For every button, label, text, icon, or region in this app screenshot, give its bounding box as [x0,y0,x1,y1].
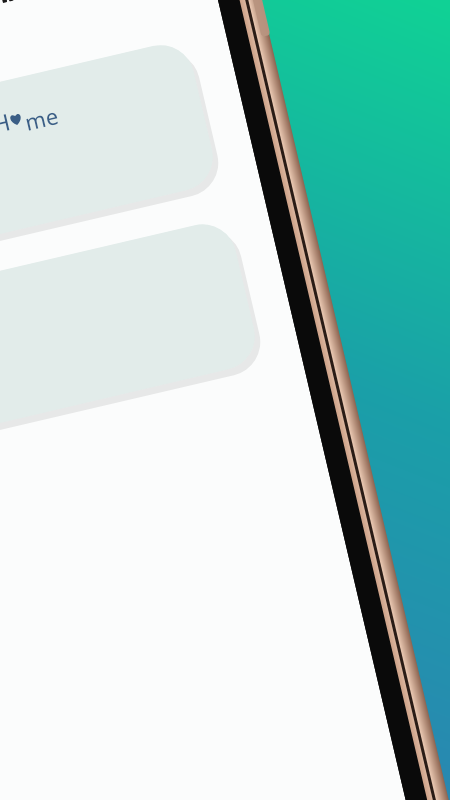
staticText: me [22,100,61,137]
button[interactable]: H [0,90,74,137]
staticText: H [0,105,14,138]
